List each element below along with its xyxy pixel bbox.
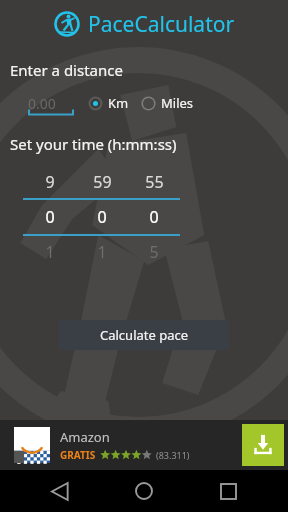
- button[interactable]: Download: [242, 424, 284, 466]
- staticText: Amazon: [60, 428, 110, 446]
- staticText: 59: [93, 171, 112, 193]
- staticText: 55: [145, 171, 164, 193]
- staticText: Calculate pace: [100, 326, 189, 344]
- staticText: PaceCalculator: [88, 10, 235, 39]
- staticText: Miles: [161, 94, 194, 112]
- button[interactable]: Back: [36, 470, 84, 512]
- staticText: 1: [97, 241, 107, 263]
- staticText: Enter a distance: [10, 60, 123, 80]
- staticText: GRATIS: [60, 448, 96, 462]
- staticText: 0: [97, 206, 107, 228]
- button[interactable]: 0.00: [28, 90, 74, 116]
- button[interactable]: 59: [76, 166, 128, 268]
- staticText: Km: [108, 94, 129, 112]
- button[interactable]: Miles: [139, 91, 196, 115]
- button[interactable]: 55: [128, 166, 180, 268]
- staticText: 5: [149, 241, 159, 263]
- staticText: (83.311): [156, 449, 190, 461]
- button[interactable]: 9: [23, 166, 76, 268]
- staticText: 0: [45, 206, 55, 228]
- staticText: 0: [149, 206, 159, 228]
- staticText: Set your time (h:mm:ss): [10, 134, 177, 154]
- button[interactable]: Amazon: [0, 420, 288, 470]
- staticText: 1: [45, 241, 55, 263]
- button[interactable]: Km: [86, 91, 131, 115]
- staticText: 9: [45, 171, 55, 193]
- staticText: 0.00: [28, 94, 56, 113]
- button[interactable]: Recent apps: [204, 470, 252, 512]
- button[interactable]: Calculate pace: [59, 320, 229, 350]
- button[interactable]: Home: [120, 470, 168, 512]
